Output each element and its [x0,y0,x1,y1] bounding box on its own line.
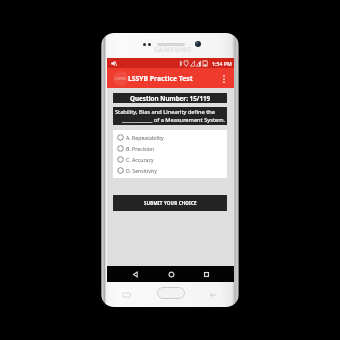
button[interactable]: D. Sensitivity [113,165,227,176]
staticText: D. Sensitivity [126,167,157,174]
button[interactable]: B. Precision [113,143,227,154]
staticText: Question Number: 15/119 [130,94,211,103]
staticText: SAMSUNG [154,45,193,55]
button[interactable]: More options [217,72,230,85]
staticText: ____________ of a Measurement System. [115,116,225,124]
staticText: LSSYB [115,76,126,81]
button[interactable]: SUBMIT YOUR CHOICE [113,195,227,211]
button[interactable]: C. Accuracy [113,154,227,165]
staticText: A. Repeatability [126,134,164,141]
staticText: C. Accuracy [126,156,154,163]
staticText: SUBMIT YOUR CHOICE [144,200,197,206]
button[interactable]: Recents [199,267,213,281]
staticText: Stability, Bias and Linearity define the [115,108,225,116]
staticText: LSSYB Practice Test [128,74,193,83]
staticText: B. Precision [126,145,155,152]
button[interactable]: A. Repeatability [113,132,227,143]
button[interactable]: Home [164,267,178,281]
button[interactable]: Back [128,267,142,281]
staticText: 1:54 PM [212,60,232,67]
